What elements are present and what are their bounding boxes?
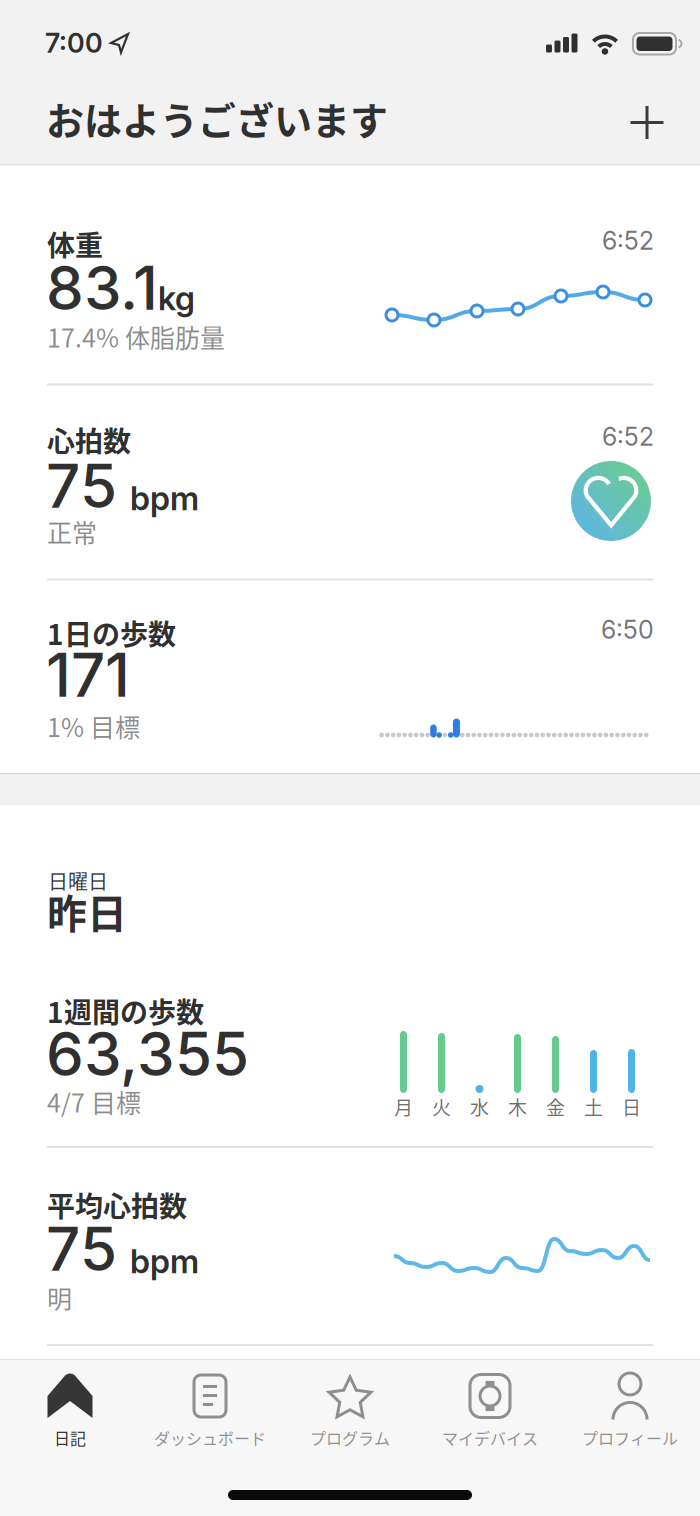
staticText: 心拍数 — [47, 420, 131, 460]
staticText: 6:52 — [602, 225, 654, 256]
staticText: 日曜日 — [48, 866, 108, 895]
staticText: 6:50 — [601, 614, 654, 645]
staticText: 17.4% 体脂肪量 — [47, 318, 225, 355]
staticText: 金 — [546, 1093, 565, 1120]
staticText: bpm — [130, 478, 199, 518]
staticText: プログラム — [310, 1426, 390, 1449]
button[interactable]: 1日の歩数 — [0, 580, 700, 772]
button[interactable]: 1週間の歩数 — [0, 966, 700, 1146]
staticText: 明 — [47, 1279, 72, 1316]
staticText: 水 — [470, 1093, 489, 1120]
staticText: 火 — [432, 1093, 451, 1120]
button[interactable]: 平均心拍数 — [0, 1148, 700, 1344]
staticText: 1% 目標 — [47, 708, 140, 744]
staticText: 75 — [46, 450, 117, 522]
staticText: プロフィール — [582, 1426, 678, 1449]
staticText: 171 — [46, 639, 130, 711]
staticText: 83.1 — [46, 252, 158, 324]
staticText: 月 — [394, 1093, 413, 1120]
staticText: 昨日 — [47, 882, 127, 940]
staticText: マイデバイス — [442, 1426, 538, 1449]
staticText: 6:52 — [602, 421, 654, 452]
staticText: 土 — [584, 1093, 603, 1120]
button[interactable]: ダッシュボード — [140, 1362, 280, 1516]
button[interactable] — [614, 89, 680, 155]
staticText: ダッシュボード — [154, 1426, 266, 1449]
staticText: 日記 — [54, 1426, 86, 1449]
staticText: 7:00 — [45, 26, 103, 59]
staticText: 平均心拍数 — [47, 1185, 187, 1225]
button[interactable]: 体重 — [0, 166, 700, 383]
staticText: 正常 — [47, 513, 97, 550]
staticText: bpm — [130, 1241, 199, 1281]
button[interactable]: プログラム — [280, 1362, 420, 1516]
button[interactable]: マイデバイス — [420, 1362, 560, 1516]
staticText: 日 — [622, 1093, 641, 1120]
button[interactable]: 日記 — [0, 1362, 140, 1516]
staticText: 木 — [508, 1093, 527, 1120]
staticText: 1週間の歩数 — [47, 991, 204, 1031]
staticText: 63,355 — [46, 1018, 249, 1090]
staticText: おはようございます — [46, 91, 388, 146]
staticText: 75 — [46, 1213, 117, 1285]
staticText: kg — [158, 278, 195, 318]
staticText: 1日の歩数 — [47, 613, 176, 653]
staticText: 体重 — [47, 224, 103, 264]
button[interactable]: プロフィール — [560, 1362, 700, 1516]
staticText: 4/7 目標 — [47, 1083, 141, 1120]
button[interactable]: 心拍数 — [0, 385, 700, 578]
